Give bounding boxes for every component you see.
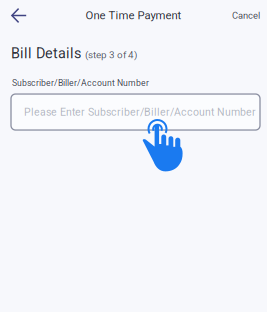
staticText: Please Enter Subscriber/Biller/Account N… [24, 106, 256, 118]
button[interactable]: Cancel [227, 0, 265, 31]
staticText: One Time Payment [85, 9, 181, 22]
staticText: (step 3 of 4) [85, 49, 137, 61]
button[interactable]: Please Enter Subscriber/Biller/Account N… [11, 94, 260, 130]
staticText: Bill Details [11, 45, 81, 62]
button[interactable]: Back [3, 0, 35, 31]
staticText: Subscriber/Biller/Account Number [12, 78, 149, 88]
staticText: Cancel [232, 10, 260, 21]
